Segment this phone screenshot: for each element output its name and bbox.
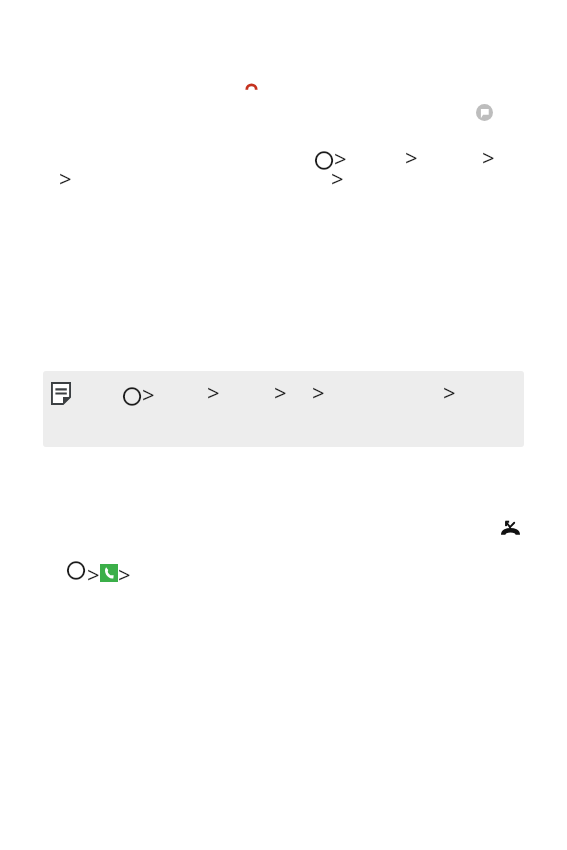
staticText: > — [312, 377, 325, 407]
staticText: > — [482, 142, 495, 172]
staticText: > — [142, 379, 155, 409]
staticText: ⭕ — [66, 558, 87, 589]
staticText: > — [331, 163, 344, 193]
staticText: > — [59, 163, 72, 193]
button[interactable]: ⭕ — [43, 371, 524, 447]
staticText: > — [207, 377, 220, 407]
staticText: > — [118, 559, 131, 589]
staticText: > — [334, 143, 347, 173]
staticText: > — [405, 142, 418, 172]
staticText: > — [274, 377, 287, 407]
button[interactable]: Missed call — [498, 515, 523, 540]
staticText: ⭕ — [122, 384, 143, 415]
button[interactable]: Missed call — [240, 76, 264, 98]
staticText: > — [87, 559, 100, 589]
staticText: ⭕ — [314, 148, 335, 179]
button[interactable]: Messages — [472, 100, 497, 125]
staticText: > — [443, 377, 456, 407]
